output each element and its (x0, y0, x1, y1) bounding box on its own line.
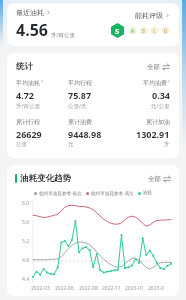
staticText: 升 (164, 141, 170, 148)
staticText: 能耗评级 (135, 11, 163, 20)
other: 切换范围 (163, 175, 171, 183)
staticText: C (153, 28, 156, 34)
staticText: 全部 (148, 175, 161, 183)
staticText: 5.2 (22, 238, 30, 245)
staticText: 2022-03 (31, 285, 50, 292)
staticText: 2023-01 (125, 285, 144, 292)
staticText: B (142, 28, 145, 34)
staticText: 9448.98 (68, 128, 102, 140)
staticText: 2022-11 (102, 285, 121, 292)
other: 切换范围 (162, 63, 170, 71)
staticText: 75.87 (68, 89, 92, 101)
staticText: 杭州市油耗参考-低位 (39, 190, 82, 196)
staticText: 2022-08 (79, 285, 98, 292)
staticText: 杭州市油耗参考-高位 (91, 190, 134, 196)
staticText: 累计油费 (68, 118, 92, 126)
staticText: 平均油费 (143, 79, 167, 87)
staticText: 4.56 (16, 19, 48, 41)
button[interactable]: 全部 (147, 63, 170, 71)
button[interactable]: 能耗评级 (135, 11, 170, 20)
staticText: 平均行程 (68, 79, 92, 87)
button[interactable]: 最近油耗 (16, 8, 51, 17)
staticText: 1302.91 (136, 128, 170, 140)
staticText: 4.8 (22, 257, 30, 264)
staticText: 公里 (16, 141, 27, 148)
staticText: 6.0 (22, 200, 30, 207)
staticText: 4.4 (22, 276, 30, 283)
staticText: 升/百公里 (16, 102, 41, 110)
staticText: S (115, 26, 120, 36)
staticText: 26629 (16, 128, 42, 140)
staticText: 4.72 (16, 89, 34, 101)
staticText: 油耗 (143, 190, 153, 196)
staticText: 升/百公里 (51, 31, 76, 39)
staticText: 油耗变化趋势 (20, 173, 71, 184)
staticText: 元/公里 (151, 102, 170, 110)
staticText: 平均油耗 (16, 79, 40, 87)
staticText: ? (168, 79, 170, 84)
staticText: 2022-06 (55, 285, 74, 292)
staticText: 累计行程 (16, 118, 40, 126)
staticText: ? (41, 79, 43, 84)
staticText: 公里/天 (68, 102, 87, 110)
staticText: D (164, 28, 168, 34)
staticText: 统计 (16, 61, 33, 72)
staticText: 全部 (147, 63, 160, 71)
staticText: 5.6 (22, 219, 30, 226)
staticText: 元 (68, 141, 74, 148)
staticText: 2023-0 (148, 285, 164, 292)
button[interactable]: 全部 (148, 175, 171, 183)
staticText: 最近油耗 (16, 8, 44, 17)
staticText: A (131, 28, 135, 34)
staticText: 0.34 (152, 89, 170, 101)
staticText: 累计加油 (146, 118, 170, 126)
